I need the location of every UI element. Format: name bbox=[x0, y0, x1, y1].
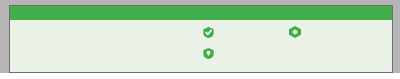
button[interactable]: Status bbox=[289, 26, 301, 38]
button[interactable]: Verified bbox=[203, 27, 214, 38]
button[interactable]: Location verified bbox=[203, 48, 214, 59]
